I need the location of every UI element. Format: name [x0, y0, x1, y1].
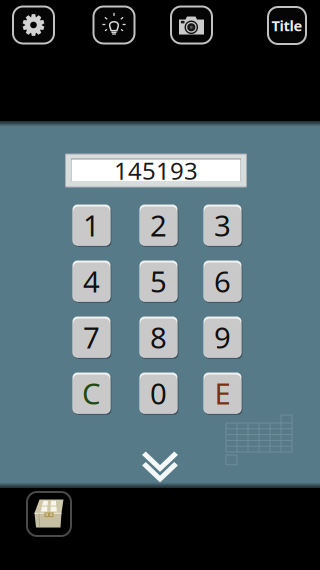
staticText: C: [82, 373, 101, 412]
button[interactable]: 6: [202, 259, 242, 302]
button[interactable]: 9: [202, 315, 242, 358]
button[interactable]: 4: [71, 259, 111, 302]
button[interactable]: Settings: [12, 5, 55, 45]
staticText: 8: [150, 317, 167, 356]
staticText: 0: [150, 373, 167, 412]
button[interactable]: E: [202, 371, 242, 414]
button[interactable]: Title: [267, 5, 307, 45]
button[interactable]: Screenshot: [170, 5, 213, 45]
button[interactable]: 7: [71, 315, 111, 358]
button[interactable]: 1: [71, 203, 111, 246]
staticText: 1: [83, 205, 100, 244]
staticText: 7: [83, 317, 100, 356]
button[interactable]: C: [71, 371, 111, 414]
button[interactable]: 5: [138, 259, 178, 302]
staticText: 4: [83, 261, 100, 300]
staticText: Title: [271, 16, 302, 35]
button[interactable]: 2: [138, 203, 178, 246]
button[interactable]: 0: [138, 371, 178, 414]
button[interactable]: 8: [138, 315, 178, 358]
staticText: 5: [150, 261, 167, 300]
staticText: 9: [214, 317, 231, 356]
staticText: 6: [214, 261, 231, 300]
staticText: E: [214, 373, 230, 412]
button[interactable]: Hint: [92, 5, 135, 45]
staticText: 145193: [114, 155, 198, 186]
staticText: 2: [150, 205, 167, 244]
staticText: 3: [214, 205, 231, 244]
button[interactable]: 3: [202, 203, 242, 246]
button[interactable]: Inventory: [26, 491, 72, 537]
